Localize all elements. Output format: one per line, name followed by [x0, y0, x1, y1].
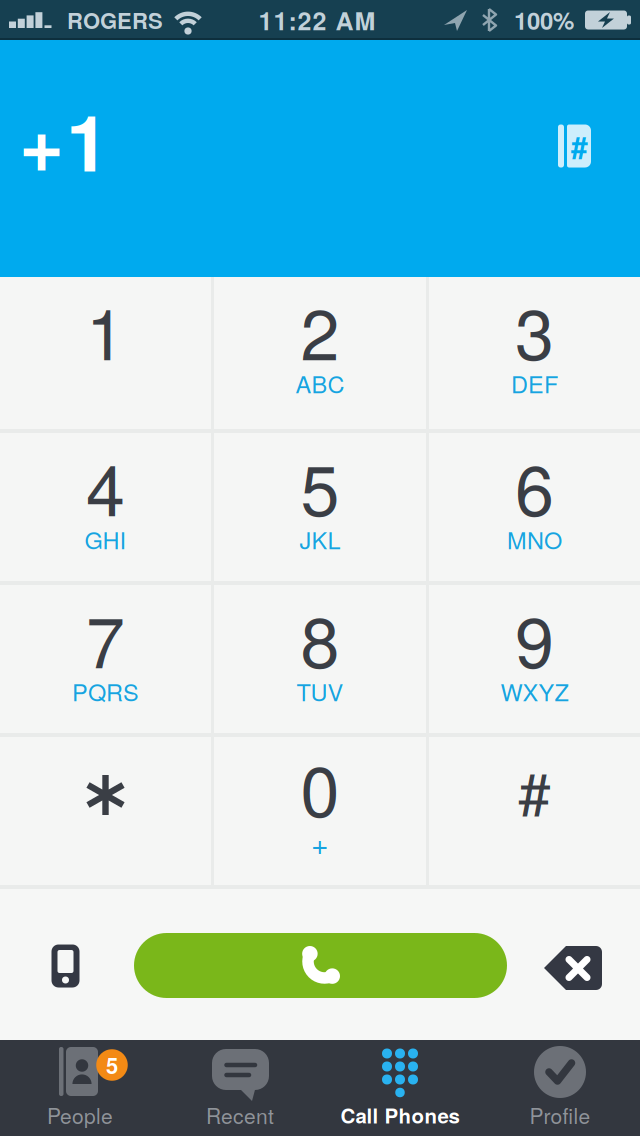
- button[interactable]: 1: [0, 277, 211, 429]
- button[interactable]: Call mobile: [51, 944, 79, 987]
- button[interactable]: 2: [214, 277, 426, 429]
- staticText: JKL: [299, 522, 340, 556]
- staticText: 2: [300, 280, 339, 380]
- staticText: 8: [300, 588, 339, 688]
- staticText: 1: [86, 280, 125, 380]
- button[interactable]: Delete: [544, 946, 602, 990]
- staticText: ABC: [295, 366, 344, 400]
- staticText: 0: [300, 737, 339, 837]
- staticText: 4: [86, 436, 125, 536]
- staticText: ROGERS: [67, 4, 163, 36]
- button[interactable]: #: [429, 737, 640, 885]
- staticText: PQRS: [72, 674, 139, 708]
- staticText: MNO: [507, 522, 562, 556]
- button[interactable]: 4: [0, 433, 211, 581]
- button[interactable]: 0: [214, 737, 426, 885]
- staticText: GHI: [84, 522, 126, 556]
- staticText: #: [518, 748, 551, 832]
- button[interactable]: Star: [0, 737, 211, 885]
- button[interactable]: Recent: [160, 1040, 320, 1136]
- staticText: 100%: [514, 3, 574, 37]
- button[interactable]: 3: [429, 277, 640, 429]
- staticText: 3: [515, 280, 554, 380]
- button[interactable]: 6: [429, 433, 640, 581]
- button[interactable]: 5: [0, 1040, 160, 1136]
- button[interactable]: Profile: [480, 1040, 640, 1136]
- staticText: Call Phones: [340, 1100, 459, 1130]
- staticText: DEF: [511, 366, 558, 400]
- staticText: +: [311, 820, 329, 863]
- button[interactable]: 7: [0, 585, 211, 733]
- button[interactable]: Call Phones: [320, 1040, 480, 1136]
- staticText: 9: [515, 588, 554, 688]
- button[interactable]: Call: [134, 933, 507, 998]
- staticText: 5: [106, 1049, 118, 1081]
- button[interactable]: 5: [214, 433, 426, 581]
- staticText: WXYZ: [500, 674, 568, 708]
- staticText: Recent: [206, 1100, 274, 1130]
- button[interactable]: 9: [429, 585, 640, 733]
- staticText: People: [47, 1100, 113, 1130]
- staticText: #: [571, 124, 588, 167]
- button[interactable]: Add to contacts: [558, 124, 591, 167]
- staticText: 6: [515, 436, 554, 536]
- staticText: 11:22 AM: [258, 2, 375, 38]
- button[interactable]: 8: [214, 585, 426, 733]
- staticText: TUV: [296, 674, 343, 708]
- staticText: 7: [86, 588, 125, 688]
- staticText: +1: [19, 85, 109, 195]
- staticText: Profile: [529, 1100, 590, 1130]
- staticText: 5: [300, 436, 339, 536]
